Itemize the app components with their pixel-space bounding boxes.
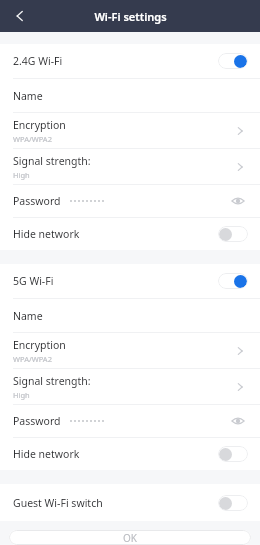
staticText: Encryption	[13, 338, 66, 352]
button[interactable]: 2.4G Wi-Fi toggle	[215, 48, 251, 74]
staticText: Guest Wi-Fi switch	[13, 496, 103, 510]
button[interactable]: Guest Wi-Fi switch toggle	[215, 490, 251, 516]
button[interactable]: Signal strength:	[0, 149, 260, 184]
button[interactable]: Back	[4, 0, 36, 32]
button[interactable]: Show password	[225, 188, 251, 214]
button[interactable]: Hide network toggle	[215, 441, 251, 467]
staticText: Password	[13, 414, 61, 428]
staticText: Password	[13, 194, 61, 208]
staticText: Wi-Fi settings	[94, 9, 167, 24]
button[interactable]: Encryption	[0, 333, 260, 368]
button[interactable]: Password	[0, 405, 260, 437]
button[interactable]: Encryption	[0, 113, 260, 148]
staticText: High	[13, 170, 30, 180]
staticText: OK	[123, 531, 137, 545]
staticText: Signal strength:	[13, 154, 91, 168]
staticText: Hide network	[13, 227, 80, 241]
staticText: Name	[13, 309, 43, 323]
staticText: 5G Wi-Fi	[13, 274, 54, 288]
button[interactable]: Show password	[225, 408, 251, 434]
staticText: 2.4G Wi-Fi	[13, 54, 63, 68]
staticText: Name	[13, 89, 43, 103]
button[interactable]: Hide network	[0, 438, 260, 470]
button[interactable]: 5G Wi-Fi toggle	[215, 268, 251, 294]
staticText: WPA/WPA2	[13, 134, 52, 144]
staticText: Encryption	[13, 118, 66, 132]
staticText: High	[13, 390, 30, 400]
staticText: WPA/WPA2	[13, 354, 52, 364]
button[interactable]: OK	[9, 530, 251, 545]
button[interactable]: Signal strength:	[0, 369, 260, 404]
button[interactable]: 2.4G Wi-Fi	[0, 44, 260, 78]
button[interactable]: 5G Wi-Fi	[0, 264, 260, 298]
button[interactable]: Name	[0, 299, 260, 332]
staticText: Hide network	[13, 447, 80, 461]
button[interactable]: Password	[0, 185, 260, 217]
button[interactable]: Guest Wi-Fi switch	[0, 484, 260, 521]
button[interactable]: Hide network toggle	[215, 221, 251, 247]
button[interactable]: Name	[0, 79, 260, 112]
button[interactable]: Hide network	[0, 218, 260, 250]
staticText: Signal strength:	[13, 374, 91, 388]
